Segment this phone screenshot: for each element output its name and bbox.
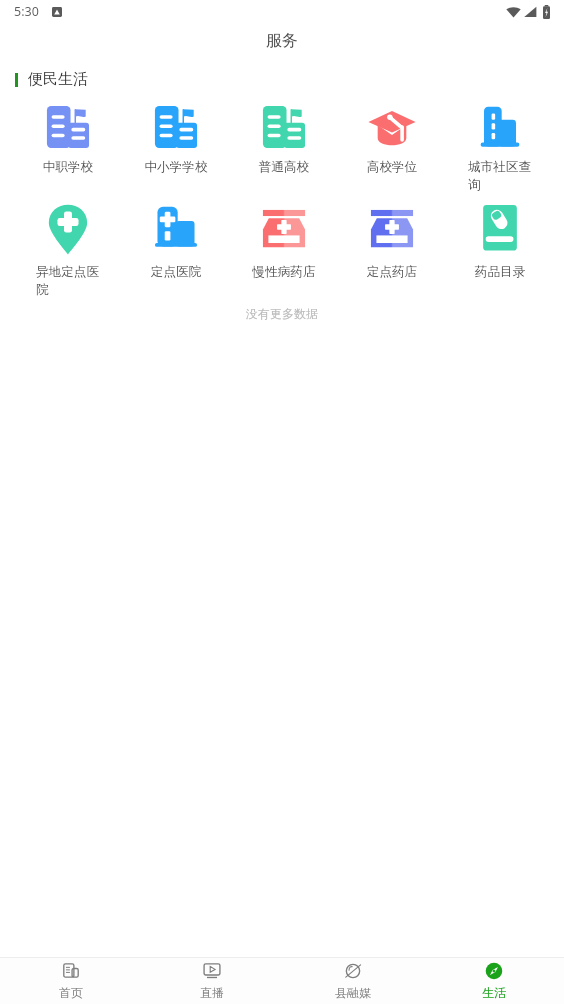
- button[interactable]: 普通高校: [230, 100, 338, 194]
- staticText: 普通高校: [252, 159, 316, 175]
- staticText: 生活: [482, 985, 506, 1000]
- staticText: 没有更多数据: [0, 306, 564, 321]
- staticText: 慢性病药店: [252, 264, 316, 280]
- staticText: 便民生活: [28, 70, 88, 89]
- button[interactable]: 生活: [423, 958, 564, 1004]
- button[interactable]: 定点药店: [338, 200, 446, 294]
- staticText: 定点医院: [144, 264, 208, 280]
- staticText: 中职学校: [36, 159, 100, 175]
- staticText: 5:30: [14, 3, 39, 20]
- other: 生活: [485, 962, 503, 980]
- other: 直播: [203, 962, 221, 980]
- staticText: 中小学学校: [144, 159, 208, 175]
- staticText: 直播: [200, 985, 224, 1000]
- staticText: 药品目录: [468, 264, 532, 280]
- staticText: 县融媒: [335, 985, 371, 1000]
- button[interactable]: 慢性病药店: [230, 200, 338, 294]
- button[interactable]: 异地定点医院: [14, 200, 122, 294]
- staticText: 首页: [59, 985, 83, 1000]
- button[interactable]: 首页: [0, 958, 141, 1004]
- button[interactable]: 定点医院: [122, 200, 230, 294]
- button[interactable]: 中小学学校: [122, 100, 230, 194]
- button[interactable]: 城市社区查询: [446, 100, 554, 194]
- button[interactable]: 药品目录: [446, 200, 554, 294]
- staticText: 异地定点医院: [36, 264, 100, 298]
- other: 首页: [62, 962, 80, 980]
- other: 县融媒: [344, 962, 362, 980]
- button[interactable]: 县融媒: [282, 958, 423, 1004]
- button[interactable]: 中职学校: [14, 100, 122, 194]
- button[interactable]: 高校学位: [338, 100, 446, 194]
- button[interactable]: 直播: [141, 958, 282, 1004]
- staticText: 服务: [266, 31, 298, 51]
- staticText: 高校学位: [360, 159, 424, 175]
- staticText: 定点药店: [360, 264, 424, 280]
- staticText: 城市社区查询: [468, 159, 532, 193]
